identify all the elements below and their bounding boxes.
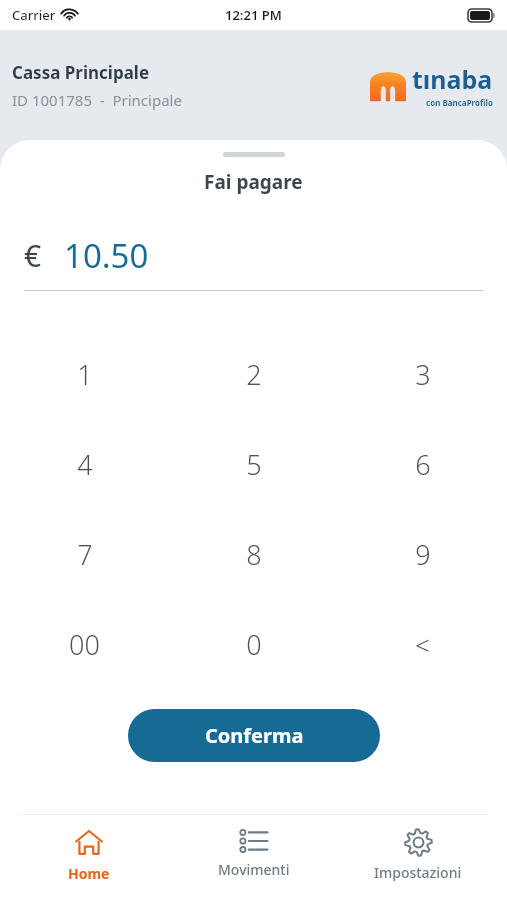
- staticText: 9: [415, 536, 431, 573]
- staticText: <: [415, 627, 430, 662]
- staticText: Home: [68, 864, 110, 883]
- staticText: Conferma: [205, 722, 304, 749]
- button[interactable]: 9: [338, 509, 507, 599]
- staticText: 6: [415, 446, 431, 483]
- button[interactable]: 1: [0, 329, 169, 419]
- button[interactable]: 7: [0, 509, 169, 599]
- button[interactable]: 5: [169, 419, 338, 509]
- staticText: Carrier: [12, 6, 56, 24]
- staticText: 2: [246, 356, 262, 393]
- staticText: 3: [415, 356, 431, 393]
- staticText: 0: [246, 626, 262, 663]
- staticText: Cassa Principale: [12, 61, 150, 84]
- button[interactable]: Conferma: [128, 709, 380, 762]
- button[interactable]: 4: [0, 419, 169, 509]
- staticText: ID 1001785 - Principale: [12, 90, 182, 110]
- button[interactable]: Movimenti: [179, 824, 329, 883]
- button[interactable]: 8: [169, 509, 338, 599]
- staticText: Fai pagare: [204, 169, 303, 195]
- button[interactable]: 3: [338, 329, 507, 419]
- staticText: 5: [246, 446, 262, 483]
- button[interactable]: Home: [14, 824, 164, 887]
- staticText: 1: [77, 356, 93, 393]
- staticText: Impostazioni: [374, 863, 462, 882]
- button[interactable]: 0: [169, 599, 338, 689]
- staticText: 4: [77, 446, 93, 483]
- staticText: tınaba: [412, 62, 493, 96]
- staticText: con BancaProfilo: [426, 97, 493, 108]
- staticText: Movimenti: [218, 860, 290, 879]
- staticText: 7: [77, 536, 93, 573]
- staticText: €: [24, 235, 42, 276]
- button[interactable]: 2: [169, 329, 338, 419]
- other: Home: [74, 828, 104, 858]
- other: Movimenti: [239, 828, 269, 854]
- button[interactable]: 6: [338, 419, 507, 509]
- staticText: 00: [69, 626, 100, 663]
- button[interactable]: <: [338, 599, 507, 689]
- button[interactable]: Impostazioni: [343, 824, 493, 886]
- staticText: 10.50: [64, 233, 149, 278]
- button[interactable]: 00: [0, 599, 169, 689]
- staticText: 8: [246, 536, 262, 573]
- other: Impostazioni: [404, 828, 433, 857]
- staticText: 12:21 PM: [225, 6, 282, 24]
